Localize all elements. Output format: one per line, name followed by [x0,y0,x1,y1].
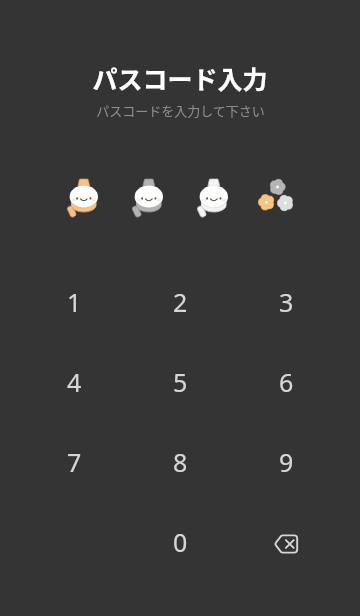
button[interactable]: 7 [30,430,118,494]
button[interactable]: Backspace [242,510,330,574]
staticText: 1 [67,285,82,319]
staticText: 0 [173,525,188,559]
button[interactable]: 4 [30,350,118,414]
staticText: 6 [279,365,294,399]
staticText: 5 [173,365,188,399]
button[interactable]: 5 [136,350,224,414]
staticText: 2 [173,285,188,319]
staticText: 3 [279,285,294,319]
button[interactable]: 8 [136,430,224,494]
button[interactable]: 6 [242,350,330,414]
button[interactable]: 1 [30,270,118,334]
staticText: パスコード入力 [92,60,268,96]
staticText: 8 [173,445,188,479]
button[interactable]: 9 [242,430,330,494]
button[interactable]: 2 [136,270,224,334]
other: Backspace [270,528,302,560]
button[interactable]: 0 [136,510,224,574]
staticText: 9 [279,445,294,479]
staticText: パスコードを入力して下さい [96,101,265,120]
button[interactable]: 3 [242,270,330,334]
staticText: 7 [67,445,82,479]
staticText: 4 [67,365,82,399]
